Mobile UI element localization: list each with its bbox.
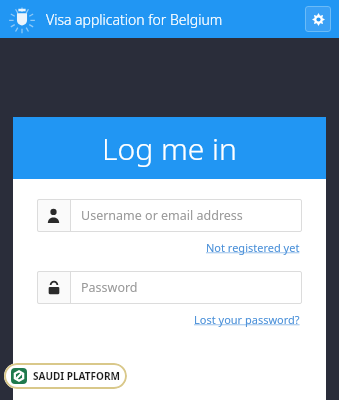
button[interactable]: Password bbox=[37, 271, 302, 304]
staticText: Visa application for Belgium bbox=[46, 10, 223, 29]
button[interactable]: Lost your password? bbox=[192, 310, 302, 329]
staticText: Not registered yet bbox=[206, 240, 300, 255]
staticText: Password bbox=[81, 279, 138, 296]
staticText: SAUDI PLATFORM bbox=[33, 369, 120, 383]
staticText: Log me in bbox=[102, 128, 237, 169]
staticText: Username or email address bbox=[81, 207, 243, 224]
button[interactable]: Settings bbox=[305, 6, 331, 32]
button[interactable]: Not registered yet bbox=[204, 238, 302, 257]
staticText: Lost your password? bbox=[194, 312, 300, 327]
button[interactable]: Username or email address bbox=[37, 199, 302, 232]
button[interactable]: SAUDI PLATFORM bbox=[4, 363, 127, 389]
